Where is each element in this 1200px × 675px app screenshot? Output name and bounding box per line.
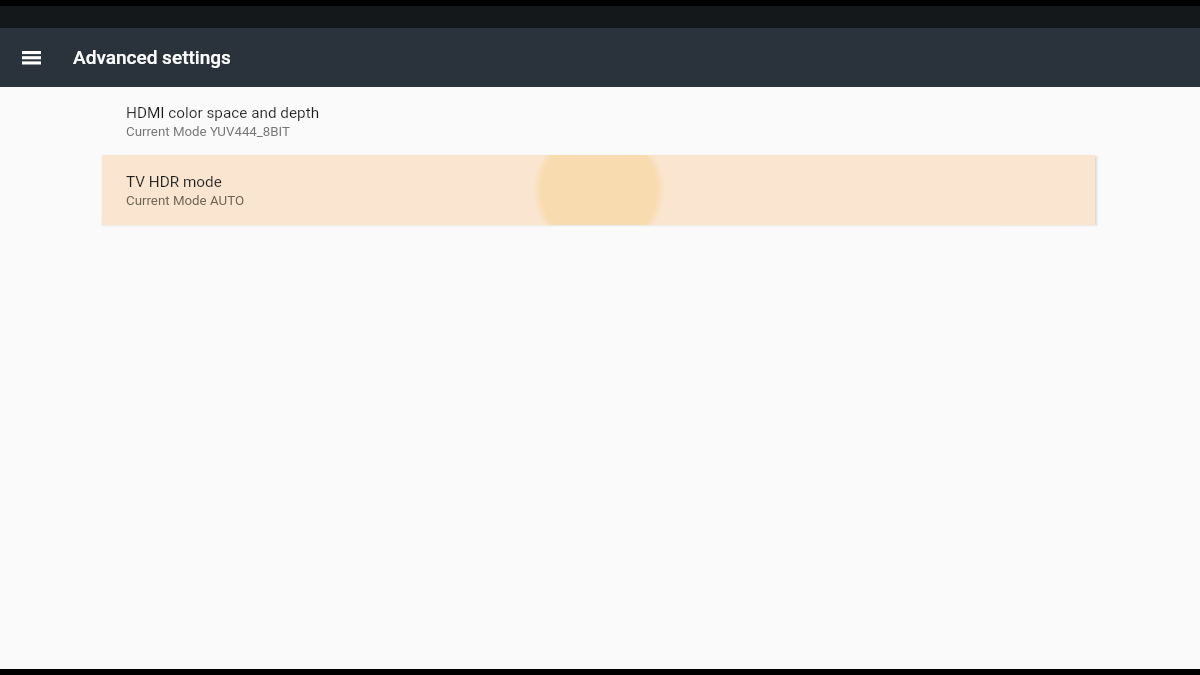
staticText: TV HDR mode (126, 173, 222, 191)
button[interactable]: Open navigation menu (0, 28, 62, 87)
button[interactable]: TV HDR mode (102, 155, 1095, 225)
staticText: HDMI color space and depth (126, 104, 320, 122)
staticText: Current Mode YUV444_8BIT (126, 124, 290, 140)
staticText: Advanced settings (73, 46, 231, 68)
button[interactable]: HDMI color space and depth (0, 87, 1200, 155)
staticText: Current Mode AUTO (126, 193, 245, 209)
